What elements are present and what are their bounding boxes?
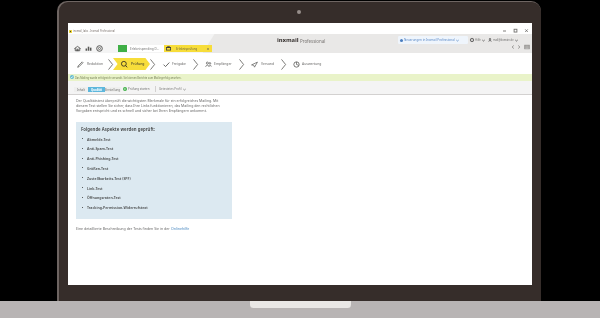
staticText: Einstellung — [105, 88, 121, 92]
staticText: Anti-Spam-Test — [87, 146, 114, 151]
button[interactable]: Qualität — [88, 87, 105, 92]
staticText: Abmelde-Test — [87, 137, 111, 142]
button[interactable]: Inhalt — [74, 87, 88, 92]
button[interactable]: Home — [73, 44, 81, 52]
staticText: Folgende Aspekte werden geprüft: — [81, 126, 156, 132]
staticText: mail@domain.de — [493, 38, 514, 42]
button[interactable]: Neuerungen in Inxmail Professional — [398, 36, 468, 44]
staticText: Auswertung — [302, 61, 322, 66]
button[interactable] — [118, 58, 154, 70]
button[interactable] — [160, 58, 196, 70]
staticText: Inhalt — [77, 88, 85, 92]
staticText: Anti-Phishing-Test — [87, 156, 119, 161]
staticText: Zustellbarkeits-Test (SPF) — [87, 176, 131, 181]
button[interactable]: mail@domain.de — [488, 38, 518, 42]
button[interactable]: Minimize — [501, 27, 508, 34]
staticText: Das Mailing wurde erfolgreich versandt. … — [75, 76, 182, 79]
staticText: Der Qualitätstest überprüft die wichtigs… — [76, 98, 220, 113]
button[interactable] — [74, 58, 110, 70]
button[interactable]: Getestetes Profil — [158, 87, 187, 91]
staticText: Eine detaillierte Beschreibung der Tests… — [76, 226, 171, 231]
staticText: Freigabe — [172, 61, 186, 66]
staticText: inxmail_labs - Inxmail Professional — [73, 29, 115, 33]
staticText: Erlebnispending D... — [130, 47, 160, 51]
button[interactable]: Statistics — [84, 44, 92, 52]
button[interactable]: Erlebnisprüfung — [164, 45, 212, 52]
button[interactable] — [290, 58, 332, 70]
staticText: Neuerungen in Inxmail Professional — [404, 38, 455, 42]
button[interactable]: Maximize — [512, 27, 519, 34]
staticText: Prüfung starten — [128, 87, 150, 91]
button[interactable]: Erlebnispending D... — [118, 45, 164, 52]
button[interactable]: Back — [510, 44, 516, 50]
staticText: Qualität — [91, 88, 102, 92]
button[interactable]: Hilfe — [470, 38, 485, 42]
staticText: inxmail — [277, 36, 299, 44]
staticText: Professional — [300, 38, 326, 44]
staticText: Redaktion — [87, 61, 104, 66]
staticText: Hilfe — [475, 38, 481, 42]
staticText: Prüfung — [131, 61, 145, 66]
staticText: Getestetes Profil — [159, 87, 182, 91]
button[interactable]: Forward — [516, 44, 522, 50]
staticText: Empfänger — [214, 61, 232, 66]
button[interactable]: Menu — [524, 44, 530, 50]
button[interactable]: Settings — [95, 44, 103, 52]
button[interactable]: Onlinehilfe — [171, 226, 190, 231]
staticText: Erlebnisprüfung — [176, 47, 198, 51]
staticText: Größen-Test — [87, 166, 109, 171]
button[interactable] — [202, 58, 238, 70]
button[interactable]: Einstellung — [105, 87, 121, 92]
button[interactable]: Close — [523, 27, 530, 34]
staticText: Öffnungsraten-Test — [87, 195, 121, 200]
button[interactable]: Prüfung starten — [122, 87, 151, 91]
staticText: Link-Test — [87, 186, 103, 191]
staticText: Versand — [261, 61, 274, 66]
staticText: Tracking-Permission-Widerrufstext — [87, 205, 148, 210]
button[interactable] — [248, 58, 284, 70]
